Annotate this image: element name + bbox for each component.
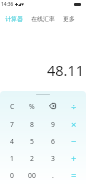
staticText: 1 bbox=[10, 154, 14, 163]
staticText: 5 bbox=[30, 137, 34, 146]
button[interactable]: 4 bbox=[2, 133, 22, 150]
button[interactable]: 9 bbox=[42, 115, 63, 133]
button[interactable]: 3 bbox=[42, 150, 63, 167]
button[interactable]: % bbox=[22, 97, 42, 115]
button[interactable]: 8 bbox=[22, 115, 42, 133]
staticText: . bbox=[52, 171, 54, 180]
button[interactable]: × bbox=[63, 115, 84, 133]
staticText: − bbox=[71, 135, 77, 148]
button[interactable]: 在线汇率 bbox=[31, 9, 55, 27]
staticText: 14:36 bbox=[1, 1, 14, 8]
button[interactable]: 1 bbox=[2, 150, 22, 167]
staticText: = bbox=[71, 169, 77, 182]
staticText: 0 bbox=[10, 171, 14, 180]
staticText: ÷ bbox=[71, 100, 77, 113]
button[interactable]: 5 bbox=[22, 133, 42, 150]
staticText: 8 bbox=[30, 120, 34, 129]
button[interactable]: = bbox=[63, 167, 84, 184]
staticText: 3 bbox=[51, 154, 55, 163]
button[interactable]: ÷ bbox=[63, 97, 84, 115]
staticText: + bbox=[71, 152, 77, 165]
button[interactable]: + bbox=[63, 150, 84, 167]
button[interactable]: 更多 bbox=[63, 9, 75, 27]
staticText: 在线汇率 bbox=[31, 15, 55, 22]
button[interactable]: 00 bbox=[22, 167, 42, 184]
button[interactable]: 7 bbox=[2, 115, 22, 133]
other: Backspace bbox=[49, 103, 56, 109]
staticText: C bbox=[10, 102, 15, 111]
button[interactable]: 计算器 bbox=[5, 9, 23, 27]
button[interactable]: 6 bbox=[42, 133, 63, 150]
staticText: 更多 bbox=[63, 15, 75, 22]
button[interactable]: C bbox=[2, 97, 22, 115]
staticText: 7 bbox=[10, 120, 14, 129]
staticText: 9 bbox=[51, 120, 55, 129]
staticText: 48.11 bbox=[47, 60, 85, 80]
staticText: 2 bbox=[30, 154, 34, 163]
staticText: 00 bbox=[28, 171, 36, 180]
staticText: 计算器 bbox=[5, 15, 23, 22]
button[interactable]: − bbox=[63, 133, 84, 150]
button[interactable]: Backspace bbox=[42, 97, 63, 115]
staticText: 6 bbox=[51, 137, 55, 146]
button[interactable]: 2 bbox=[22, 150, 42, 167]
button[interactable]: . bbox=[42, 167, 63, 184]
staticText: % bbox=[29, 102, 35, 111]
button[interactable]: 0 bbox=[2, 167, 22, 184]
staticText: × bbox=[71, 118, 77, 131]
staticText: 4 bbox=[10, 137, 14, 146]
